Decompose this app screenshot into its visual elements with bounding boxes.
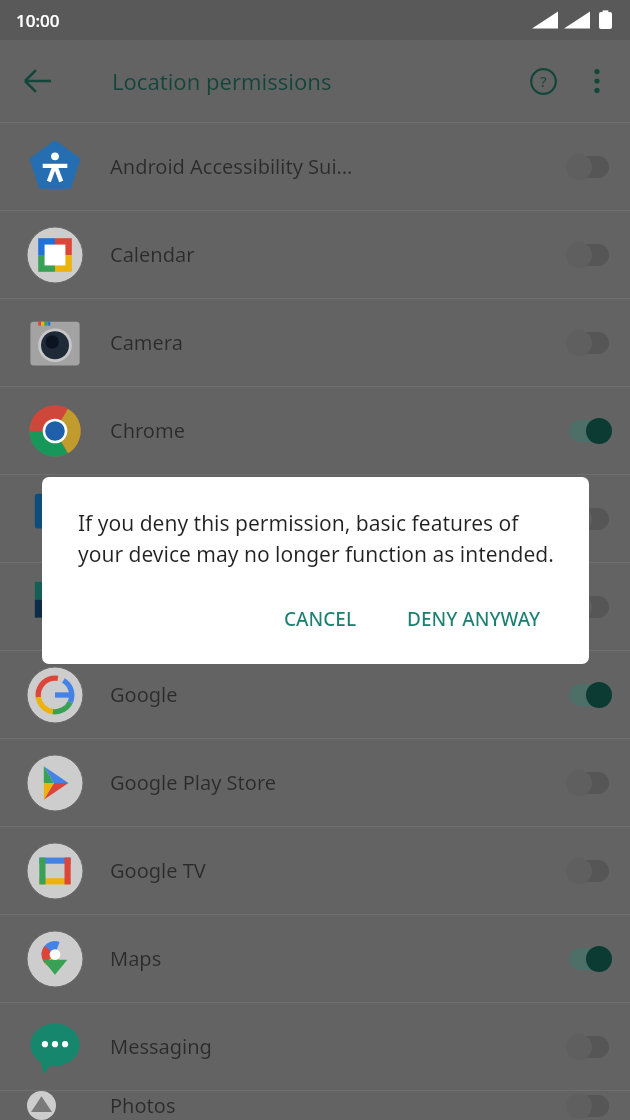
staticText: Files xyxy=(110,593,553,620)
button[interactable]: Maps xyxy=(0,915,630,1002)
button[interactable]: DENY ANYWAY xyxy=(393,594,555,644)
staticText: Maps xyxy=(110,945,553,972)
staticText: Photos xyxy=(110,1092,553,1119)
staticText: Camera xyxy=(110,329,553,356)
staticText: Android Accessibility Sui… xyxy=(110,153,553,180)
button[interactable]: Clock xyxy=(0,475,630,562)
button[interactable]: Camera xyxy=(0,299,630,386)
button[interactable]: More options xyxy=(570,54,624,108)
staticText: Messaging xyxy=(110,1033,553,1060)
button[interactable]: Google Play Store xyxy=(0,739,630,826)
staticText: If you deny this permission, basic featu… xyxy=(78,509,557,568)
staticText: 10:00 xyxy=(16,9,60,32)
staticText: Location permissions xyxy=(112,66,332,96)
button[interactable]: Photos xyxy=(0,1091,630,1120)
button[interactable]: Help xyxy=(516,54,570,108)
button[interactable]: Files xyxy=(0,563,630,650)
button[interactable]: Android Accessibility Sui… xyxy=(0,123,630,210)
staticText: CANCEL xyxy=(284,606,357,632)
button[interactable]: Google TV xyxy=(0,827,630,914)
button[interactable]: CANCEL xyxy=(270,594,371,644)
staticText: Google Play Store xyxy=(110,769,553,796)
staticText: Google xyxy=(110,681,553,708)
button[interactable]: Messaging xyxy=(0,1003,630,1090)
staticText: Google TV xyxy=(110,857,553,884)
button[interactable]: Calendar xyxy=(0,211,630,298)
staticText: Clock xyxy=(110,505,553,532)
button[interactable]: Chrome xyxy=(0,387,630,474)
staticText: Chrome xyxy=(110,417,553,444)
staticText: ? xyxy=(540,71,547,91)
button[interactable]: Back xyxy=(10,53,66,109)
staticText: Calendar xyxy=(110,241,553,268)
button[interactable]: Google xyxy=(0,651,630,738)
staticText: DENY ANYWAY xyxy=(407,606,541,632)
